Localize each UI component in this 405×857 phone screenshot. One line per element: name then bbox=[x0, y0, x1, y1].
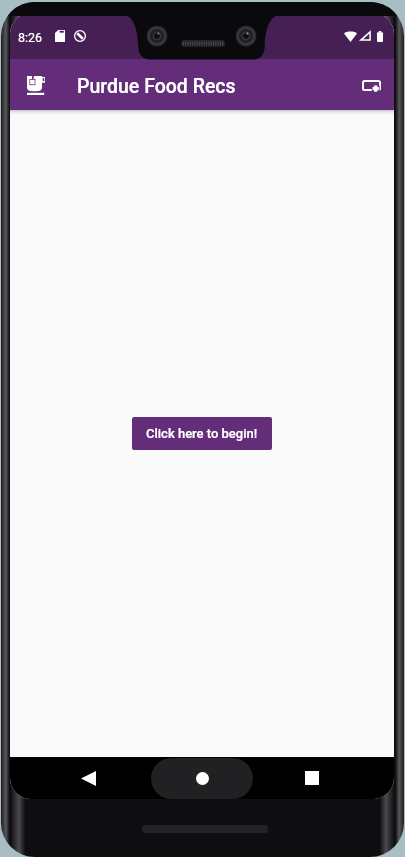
button[interactable]: Home bbox=[151, 758, 253, 799]
staticText: 8:26 bbox=[18, 30, 43, 45]
button[interactable]: Click here to begin! bbox=[132, 417, 272, 450]
staticText: Purdue Food Recs bbox=[77, 75, 236, 98]
staticText: Click here to begin! bbox=[146, 426, 258, 441]
button[interactable]: Recent apps bbox=[296, 762, 328, 794]
button[interactable]: Back bbox=[72, 762, 104, 794]
button[interactable]: Add item bbox=[353, 67, 389, 103]
button[interactable]: Open menu bbox=[18, 67, 54, 103]
